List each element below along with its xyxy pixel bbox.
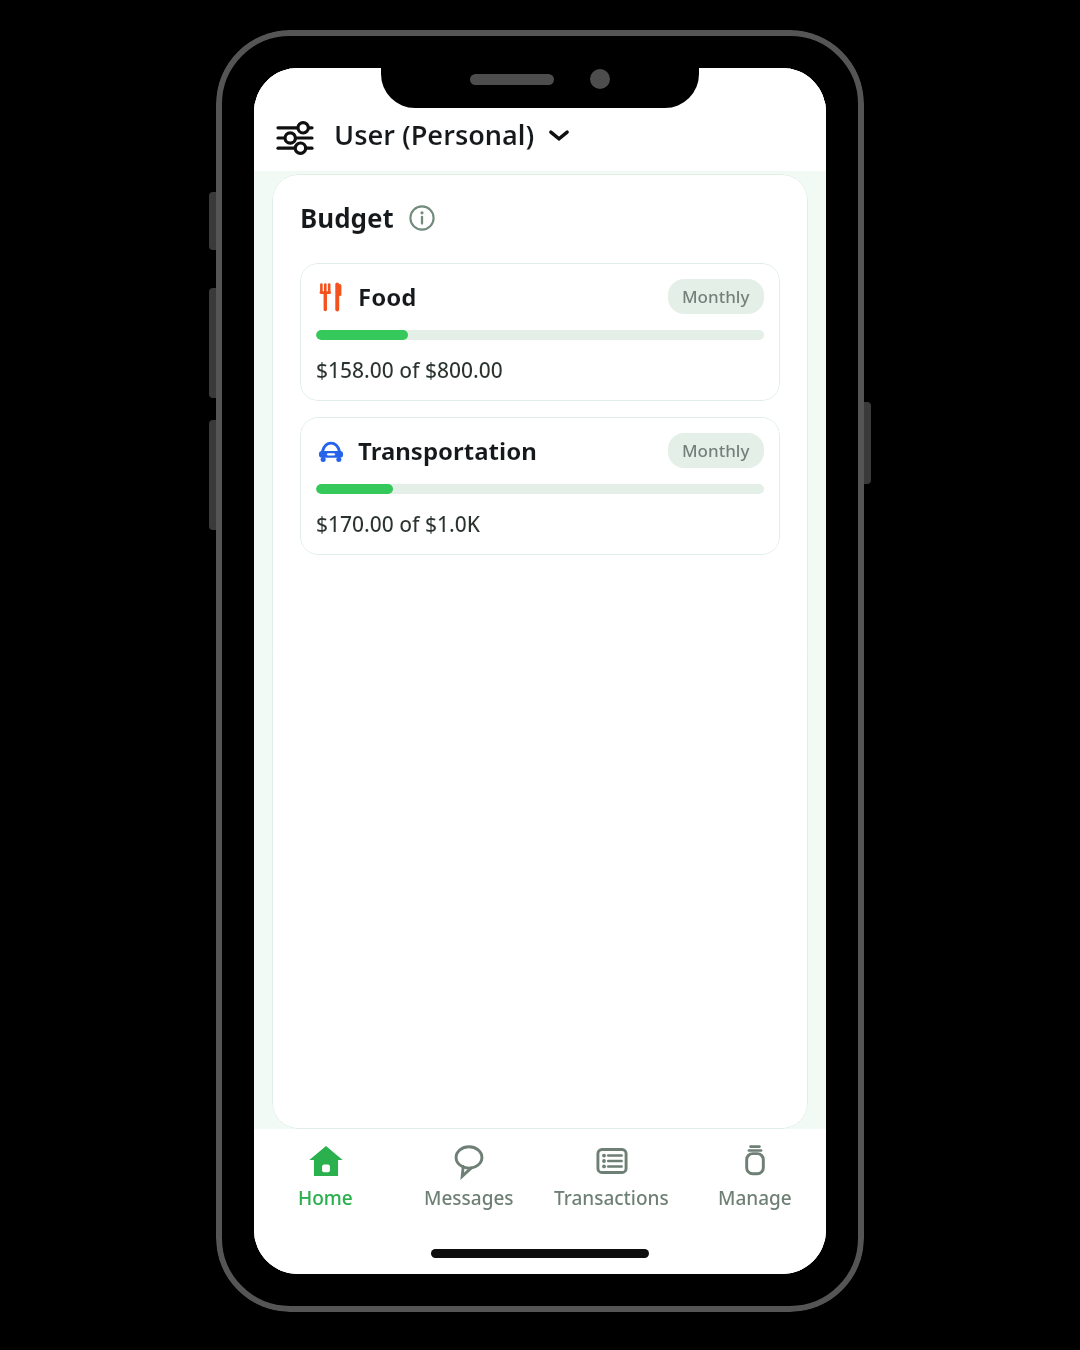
staticText: Budget	[300, 200, 394, 235]
button[interactable]: Budget info	[408, 204, 436, 232]
staticText: User (Personal)	[334, 116, 535, 153]
staticText: Transportation	[358, 434, 537, 467]
button[interactable]: Messages	[397, 1129, 540, 1224]
button[interactable]: User (Personal)	[332, 108, 573, 161]
staticText: Transactions	[554, 1185, 669, 1211]
button[interactable]: Transportation	[300, 417, 780, 555]
staticText: Monthly	[682, 439, 750, 462]
staticText: $158.00 of $800.00	[316, 356, 503, 385]
staticText: Monthly	[682, 285, 750, 308]
staticText: Manage	[718, 1185, 792, 1211]
button[interactable]: Manage	[683, 1129, 826, 1224]
staticText: Home	[298, 1185, 353, 1211]
button[interactable]: Food	[300, 263, 780, 401]
button[interactable]: Home	[254, 1129, 397, 1224]
button[interactable]: Transactions	[540, 1129, 683, 1224]
button[interactable]: Filters	[272, 115, 318, 161]
staticText: $170.00 of $1.0K	[316, 510, 481, 539]
staticText: Food	[358, 280, 417, 313]
staticText: Messages	[424, 1185, 514, 1211]
